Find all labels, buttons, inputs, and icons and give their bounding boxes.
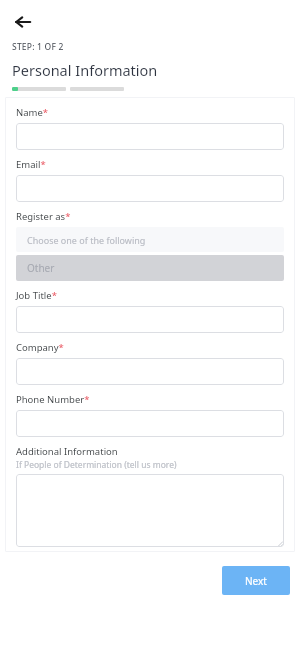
staticText: Email* bbox=[16, 158, 46, 171]
button[interactable] bbox=[16, 410, 284, 437]
staticText: Job Title* bbox=[16, 289, 57, 302]
staticText: Additional Information bbox=[16, 445, 118, 458]
staticText: Other bbox=[27, 261, 55, 275]
button[interactable] bbox=[16, 474, 284, 547]
staticText: Register as* bbox=[16, 210, 71, 223]
button[interactable]: Choose one of the following bbox=[16, 227, 284, 252]
staticText: Phone Number* bbox=[16, 393, 90, 406]
button[interactable]: Other bbox=[16, 255, 284, 281]
staticText: Next bbox=[245, 574, 267, 588]
staticText: STEP: 1 OF 2 bbox=[12, 41, 64, 53]
button[interactable] bbox=[16, 306, 284, 333]
staticText: Company* bbox=[16, 341, 64, 354]
button[interactable]: Next bbox=[222, 566, 290, 595]
button[interactable] bbox=[16, 358, 284, 385]
button[interactable]: Back bbox=[8, 7, 38, 37]
staticText: Name* bbox=[16, 106, 49, 119]
staticText: Personal Information bbox=[12, 60, 158, 80]
staticText: If People of Determination (tell us more… bbox=[16, 459, 177, 471]
button[interactable] bbox=[16, 123, 284, 150]
staticText: Choose one of the following bbox=[27, 234, 146, 246]
button[interactable] bbox=[16, 175, 284, 202]
